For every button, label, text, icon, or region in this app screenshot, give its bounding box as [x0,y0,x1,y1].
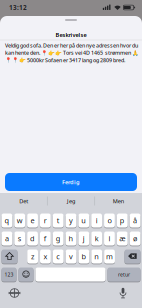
staticText: x [43,251,47,261]
button[interactable]: Det [2,193,46,209]
staticText: b [81,251,86,261]
button[interactable]: Ferdig [5,173,137,191]
staticText: j [83,233,85,243]
button[interactable]: l [104,231,115,246]
staticText: o [107,215,111,225]
button[interactable]: Delete [124,249,140,264]
button[interactable]: c [53,249,64,264]
staticText: ø [133,233,137,243]
button[interactable]: p [117,213,128,228]
staticText: Ferdig [62,178,80,186]
staticText: a [5,233,9,243]
button[interactable]: d [27,231,38,246]
button[interactable]: æ [117,231,128,246]
staticText: q [4,215,9,225]
button[interactable]: v [66,249,76,264]
staticText: retur [118,271,130,278]
button[interactable]: y [66,213,76,228]
staticText: w [17,215,23,225]
button[interactable]: a [1,231,12,246]
button[interactable]: w [14,213,25,228]
button[interactable]: Dictation [118,287,128,299]
button[interactable]: g [53,231,64,246]
staticText: 📍📍👉 5000kr Sofaen er 3417 lang og 2809 b… [5,56,125,64]
staticText: 13:12 [9,3,27,12]
button[interactable]: Emoji [18,267,33,282]
staticText: Det [19,197,28,205]
staticText: f [44,233,47,243]
button[interactable]: Men [96,193,140,209]
staticText: i [96,215,98,225]
staticText: g [56,233,61,243]
staticText: c [56,251,60,261]
staticText: h [68,233,73,243]
staticText: r [44,215,47,225]
staticText: k [95,233,99,243]
button[interactable]: Shift [1,249,17,264]
staticText: u [81,215,86,225]
staticText: e [30,215,34,225]
staticText: Jeg [67,197,75,205]
staticText: m [106,251,113,261]
button[interactable]: retur [107,267,140,282]
staticText: y [69,215,73,225]
button[interactable]: n [91,249,102,264]
staticText: z [31,251,34,261]
button[interactable]: i [91,213,102,228]
staticText: Men [113,197,124,205]
button[interactable]: ø [130,231,140,246]
staticText: l [108,233,110,243]
button[interactable]: u [78,213,89,228]
button[interactable]: t [53,213,64,228]
button[interactable]: m [104,249,115,264]
button[interactable]: 123 [1,267,16,282]
button[interactable]: j [78,231,89,246]
staticText: d [30,233,35,243]
button[interactable]: h [66,231,76,246]
staticText: t [57,215,60,225]
staticText: æ [119,233,125,243]
staticText: kan hente den. 📍👉👉 Tors vei 4D 1465 strø… [5,49,139,56]
button[interactable]: k [91,231,102,246]
button[interactable]: z [27,249,38,264]
button[interactable]: q [1,213,12,228]
button[interactable]: b [78,249,89,264]
staticText: v [69,251,73,261]
button[interactable]: å [130,213,140,228]
staticText: n [94,251,99,261]
staticText: Veldig god sofa. Den er her på den nye a… [5,42,138,49]
button[interactable]: f [40,231,51,246]
button[interactable]: Jeg [49,193,93,209]
button[interactable]: o [104,213,115,228]
button[interactable]: Next keyboard [9,287,20,298]
button[interactable]: x [40,249,51,264]
button[interactable]: Space [35,267,105,282]
staticText: å [133,215,137,225]
staticText: 123 [4,271,13,278]
staticText: p [120,215,125,225]
staticText: s [18,233,22,243]
button[interactable]: e [27,213,38,228]
button[interactable]: r [40,213,51,228]
button[interactable]: s [14,231,25,246]
staticText: Beskrivelse [55,31,86,39]
